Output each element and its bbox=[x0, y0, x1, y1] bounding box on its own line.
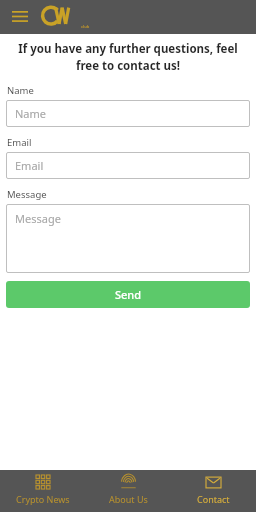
staticText: Message bbox=[7, 188, 47, 201]
button[interactable]: CW club logo bbox=[40, 3, 92, 31]
button[interactable]: Email bbox=[6, 152, 250, 179]
staticText: club bbox=[81, 24, 90, 29]
button[interactable]: Message bbox=[6, 204, 250, 273]
button[interactable]: Contact bbox=[171, 470, 256, 512]
staticText: Send bbox=[115, 287, 142, 302]
button[interactable]: About Us bbox=[86, 470, 171, 512]
staticText: Crypto News bbox=[16, 493, 70, 505]
staticText: Message bbox=[15, 211, 61, 226]
staticText: Email bbox=[7, 136, 32, 149]
staticText: Name bbox=[15, 106, 47, 121]
staticText: Email bbox=[15, 158, 44, 173]
staticText: If you have any further questions, feel … bbox=[10, 41, 246, 73]
button[interactable]: Send bbox=[6, 281, 250, 308]
staticText: About Us bbox=[109, 493, 148, 505]
staticText: Name bbox=[7, 84, 34, 97]
button[interactable]: Crypto News bbox=[0, 470, 86, 512]
staticText: Contact bbox=[197, 493, 230, 505]
button[interactable]: Name bbox=[6, 100, 250, 127]
button[interactable]: Menu bbox=[8, 5, 32, 29]
